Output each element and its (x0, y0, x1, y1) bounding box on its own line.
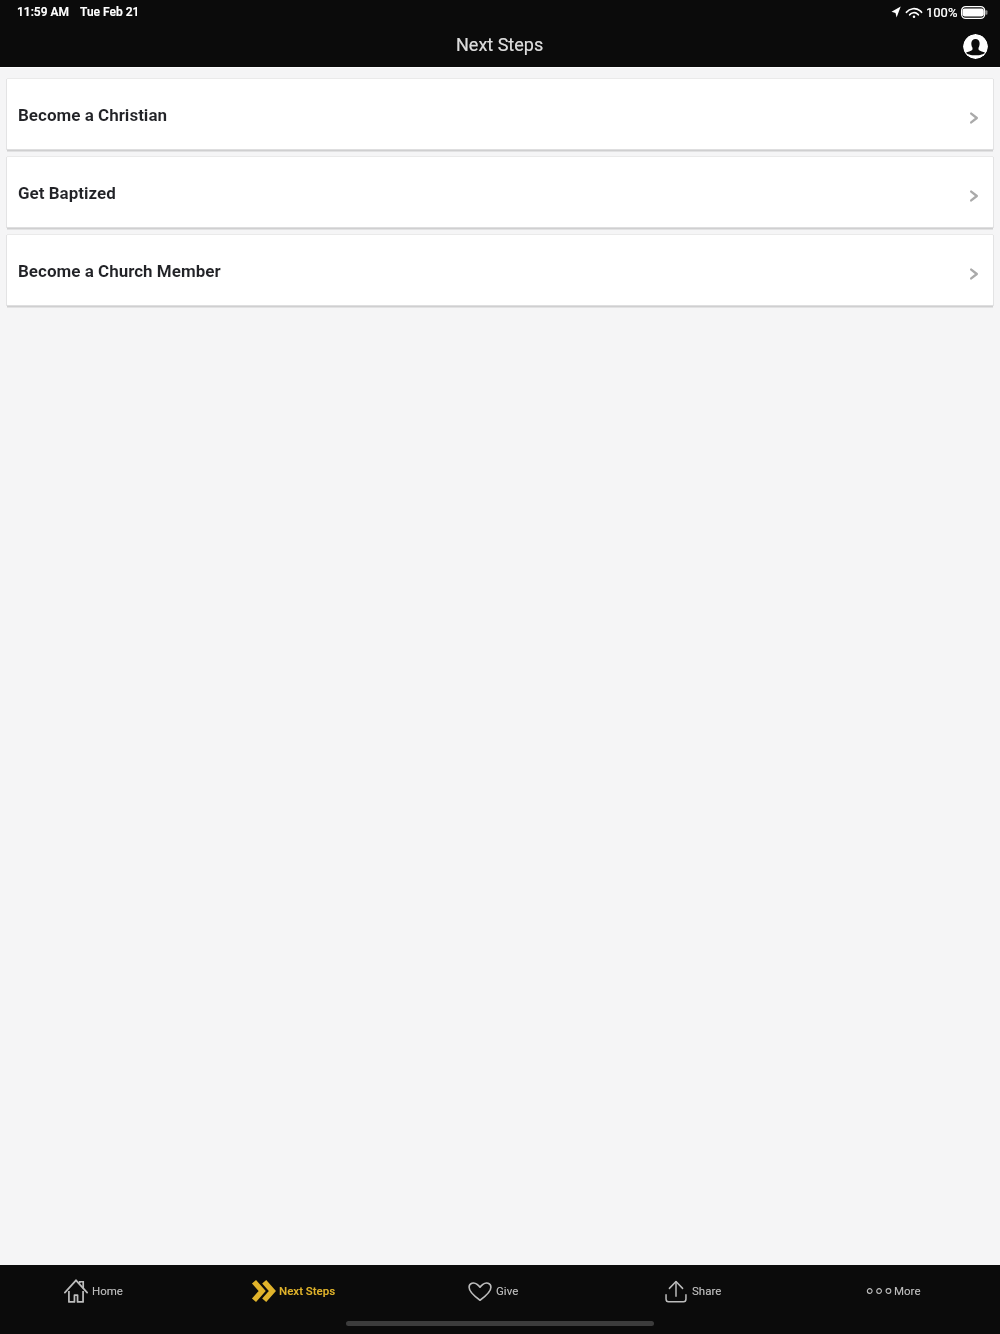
staticText: 100% (926, 5, 958, 20)
staticText: Become a Christian (18, 105, 168, 125)
button[interactable]: Become a Church Member (7, 235, 993, 305)
button[interactable]: More (793, 1265, 993, 1316)
button[interactable]: Give (393, 1265, 593, 1316)
staticText: Get Baptized (18, 183, 116, 203)
staticText: Tue Feb 21 (80, 5, 140, 19)
staticText: Become a Church Member (18, 261, 221, 281)
staticText: Next Steps (279, 1284, 336, 1297)
button[interactable]: Get Baptized (7, 157, 993, 227)
staticText: More (894, 1284, 921, 1297)
staticText: Home (92, 1284, 123, 1297)
staticText: Give (496, 1284, 519, 1297)
button[interactable]: Home (0, 1265, 193, 1316)
button[interactable]: Share (593, 1265, 793, 1316)
staticText: Share (692, 1284, 722, 1297)
button[interactable]: Profile (963, 34, 988, 59)
staticText: Next Steps (456, 34, 544, 55)
staticText: 11:59 AM (17, 5, 69, 19)
button[interactable]: Become a Christian (7, 79, 993, 149)
button[interactable]: Next Steps (193, 1265, 393, 1316)
